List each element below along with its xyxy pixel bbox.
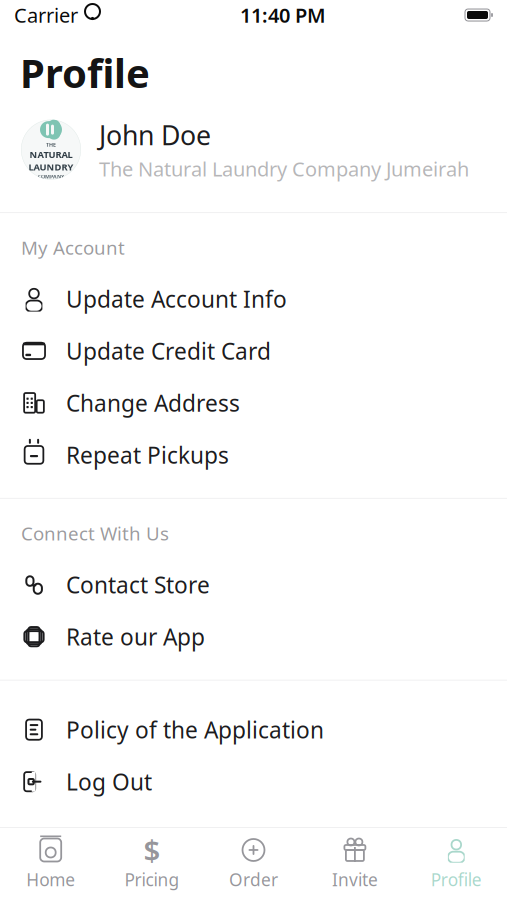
button[interactable]: Contact Store xyxy=(0,559,507,611)
button[interactable]: Rate our App xyxy=(0,611,507,663)
staticText: Policy of the Application xyxy=(66,715,324,745)
staticText: My Account xyxy=(21,235,125,260)
button[interactable]: Update Account Info xyxy=(0,273,507,325)
button[interactable]: Order xyxy=(203,832,304,896)
button[interactable]: Update Credit Card xyxy=(0,325,507,377)
staticText: LAUNDRY xyxy=(28,161,73,173)
staticText: Invite xyxy=(332,868,378,891)
staticText: Contact Store xyxy=(66,570,210,600)
button[interactable]: Home xyxy=(0,832,101,896)
staticText: Update Credit Card xyxy=(66,336,271,366)
staticText: Order xyxy=(229,868,278,891)
staticText: Carrier xyxy=(14,2,78,28)
staticText: THE xyxy=(46,141,56,148)
staticText: Home xyxy=(26,868,75,891)
staticText: COMPANY xyxy=(38,173,64,180)
staticText: Profile xyxy=(20,46,150,99)
button[interactable]: $ xyxy=(101,832,203,896)
staticText: Connect With Us xyxy=(21,521,169,546)
staticText: NATURAL xyxy=(29,148,72,161)
staticText: John Doe xyxy=(99,117,211,152)
button[interactable]: Policy of the Application xyxy=(0,704,507,756)
staticText: $ xyxy=(144,830,161,869)
button[interactable]: Log Out xyxy=(0,756,507,808)
button[interactable]: Change Address xyxy=(0,377,507,429)
staticText: The Natural Laundry Company Jumeirah xyxy=(99,155,469,182)
staticText: Rate our App xyxy=(66,622,205,652)
staticText: Log Out xyxy=(66,767,152,797)
staticText: 11:40 PM xyxy=(240,2,326,28)
staticText: Change Address xyxy=(66,388,240,418)
staticText: Update Account Info xyxy=(66,284,287,314)
staticText: Pricing xyxy=(125,868,180,891)
button[interactable]: Profile xyxy=(406,832,507,896)
staticText: Repeat Pickups xyxy=(66,440,229,470)
button[interactable]: Invite xyxy=(304,832,406,896)
staticText: Profile xyxy=(431,868,482,891)
button[interactable]: Repeat Pickups xyxy=(0,429,507,481)
